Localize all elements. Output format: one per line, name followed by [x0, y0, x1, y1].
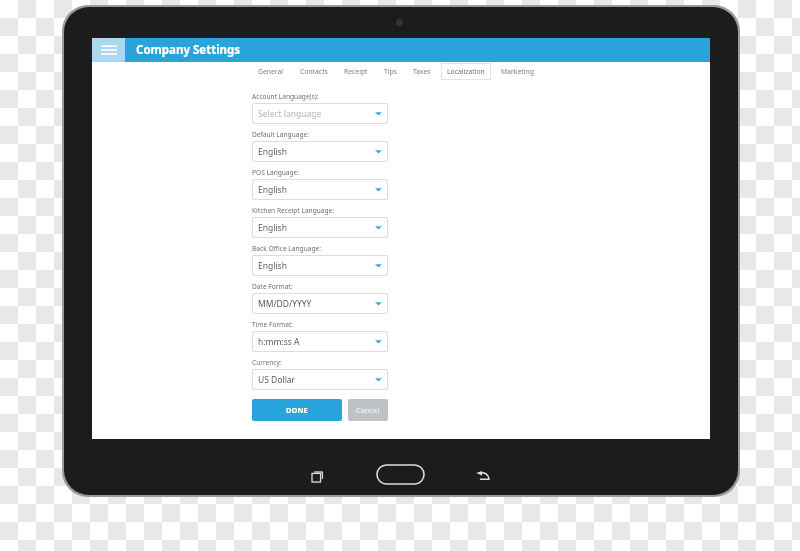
button[interactable]: English — [252, 179, 388, 200]
button[interactable]: Tips — [378, 67, 403, 76]
staticText: POS Language: — [252, 168, 300, 177]
staticText: Contacts — [300, 67, 328, 76]
staticText: Time Format: — [252, 320, 294, 329]
button[interactable]: Back — [470, 464, 494, 488]
staticText: Select language — [258, 108, 375, 120]
staticText: Cancel — [356, 405, 380, 415]
button[interactable]: English — [252, 141, 388, 162]
button[interactable]: DONE — [252, 399, 342, 421]
button[interactable]: US Dollar — [252, 369, 388, 390]
staticText: US Dollar — [258, 374, 375, 386]
staticText: English — [258, 222, 375, 234]
button[interactable]: Taxes — [407, 67, 437, 76]
staticText: DONE — [286, 405, 308, 415]
button[interactable]: Recent apps — [305, 464, 329, 488]
staticText: Company Settings — [136, 42, 241, 58]
staticText: h:mm:ss A — [258, 336, 375, 348]
button[interactable]: h:mm:ss A — [252, 331, 388, 352]
button[interactable]: Open navigation menu — [92, 38, 125, 62]
staticText: General — [258, 67, 284, 76]
button[interactable]: Cancel — [348, 399, 388, 421]
button[interactable]: English — [252, 217, 388, 238]
staticText: Back Office Language: — [252, 244, 321, 253]
staticText: MM/DD/YYYY — [258, 298, 375, 310]
staticText: English — [258, 260, 375, 272]
button[interactable]: Select language — [252, 103, 388, 124]
staticText: Marketing — [501, 67, 534, 76]
button[interactable]: English — [252, 255, 388, 276]
staticText: Default Language: — [252, 130, 309, 139]
button[interactable]: Marketing — [495, 67, 540, 76]
staticText: Currency: — [252, 358, 282, 367]
staticText: Date Format: — [252, 282, 293, 291]
staticText: Kitchen Receipt Language: — [252, 206, 335, 215]
button[interactable]: General — [252, 67, 290, 76]
staticText: English — [258, 146, 375, 158]
staticText: Account Language(s): — [252, 92, 319, 101]
button[interactable]: Receipt — [338, 67, 374, 76]
button[interactable]: Contacts — [294, 67, 334, 76]
button[interactable]: Home — [377, 465, 424, 484]
button[interactable]: MM/DD/YYYY — [252, 293, 388, 314]
staticText: English — [258, 184, 375, 196]
staticText: Localization — [447, 67, 485, 76]
staticText: Tips — [384, 67, 397, 76]
staticText: Receipt — [344, 67, 368, 76]
staticText: Taxes — [413, 67, 431, 76]
button[interactable]: Localization — [441, 63, 491, 80]
